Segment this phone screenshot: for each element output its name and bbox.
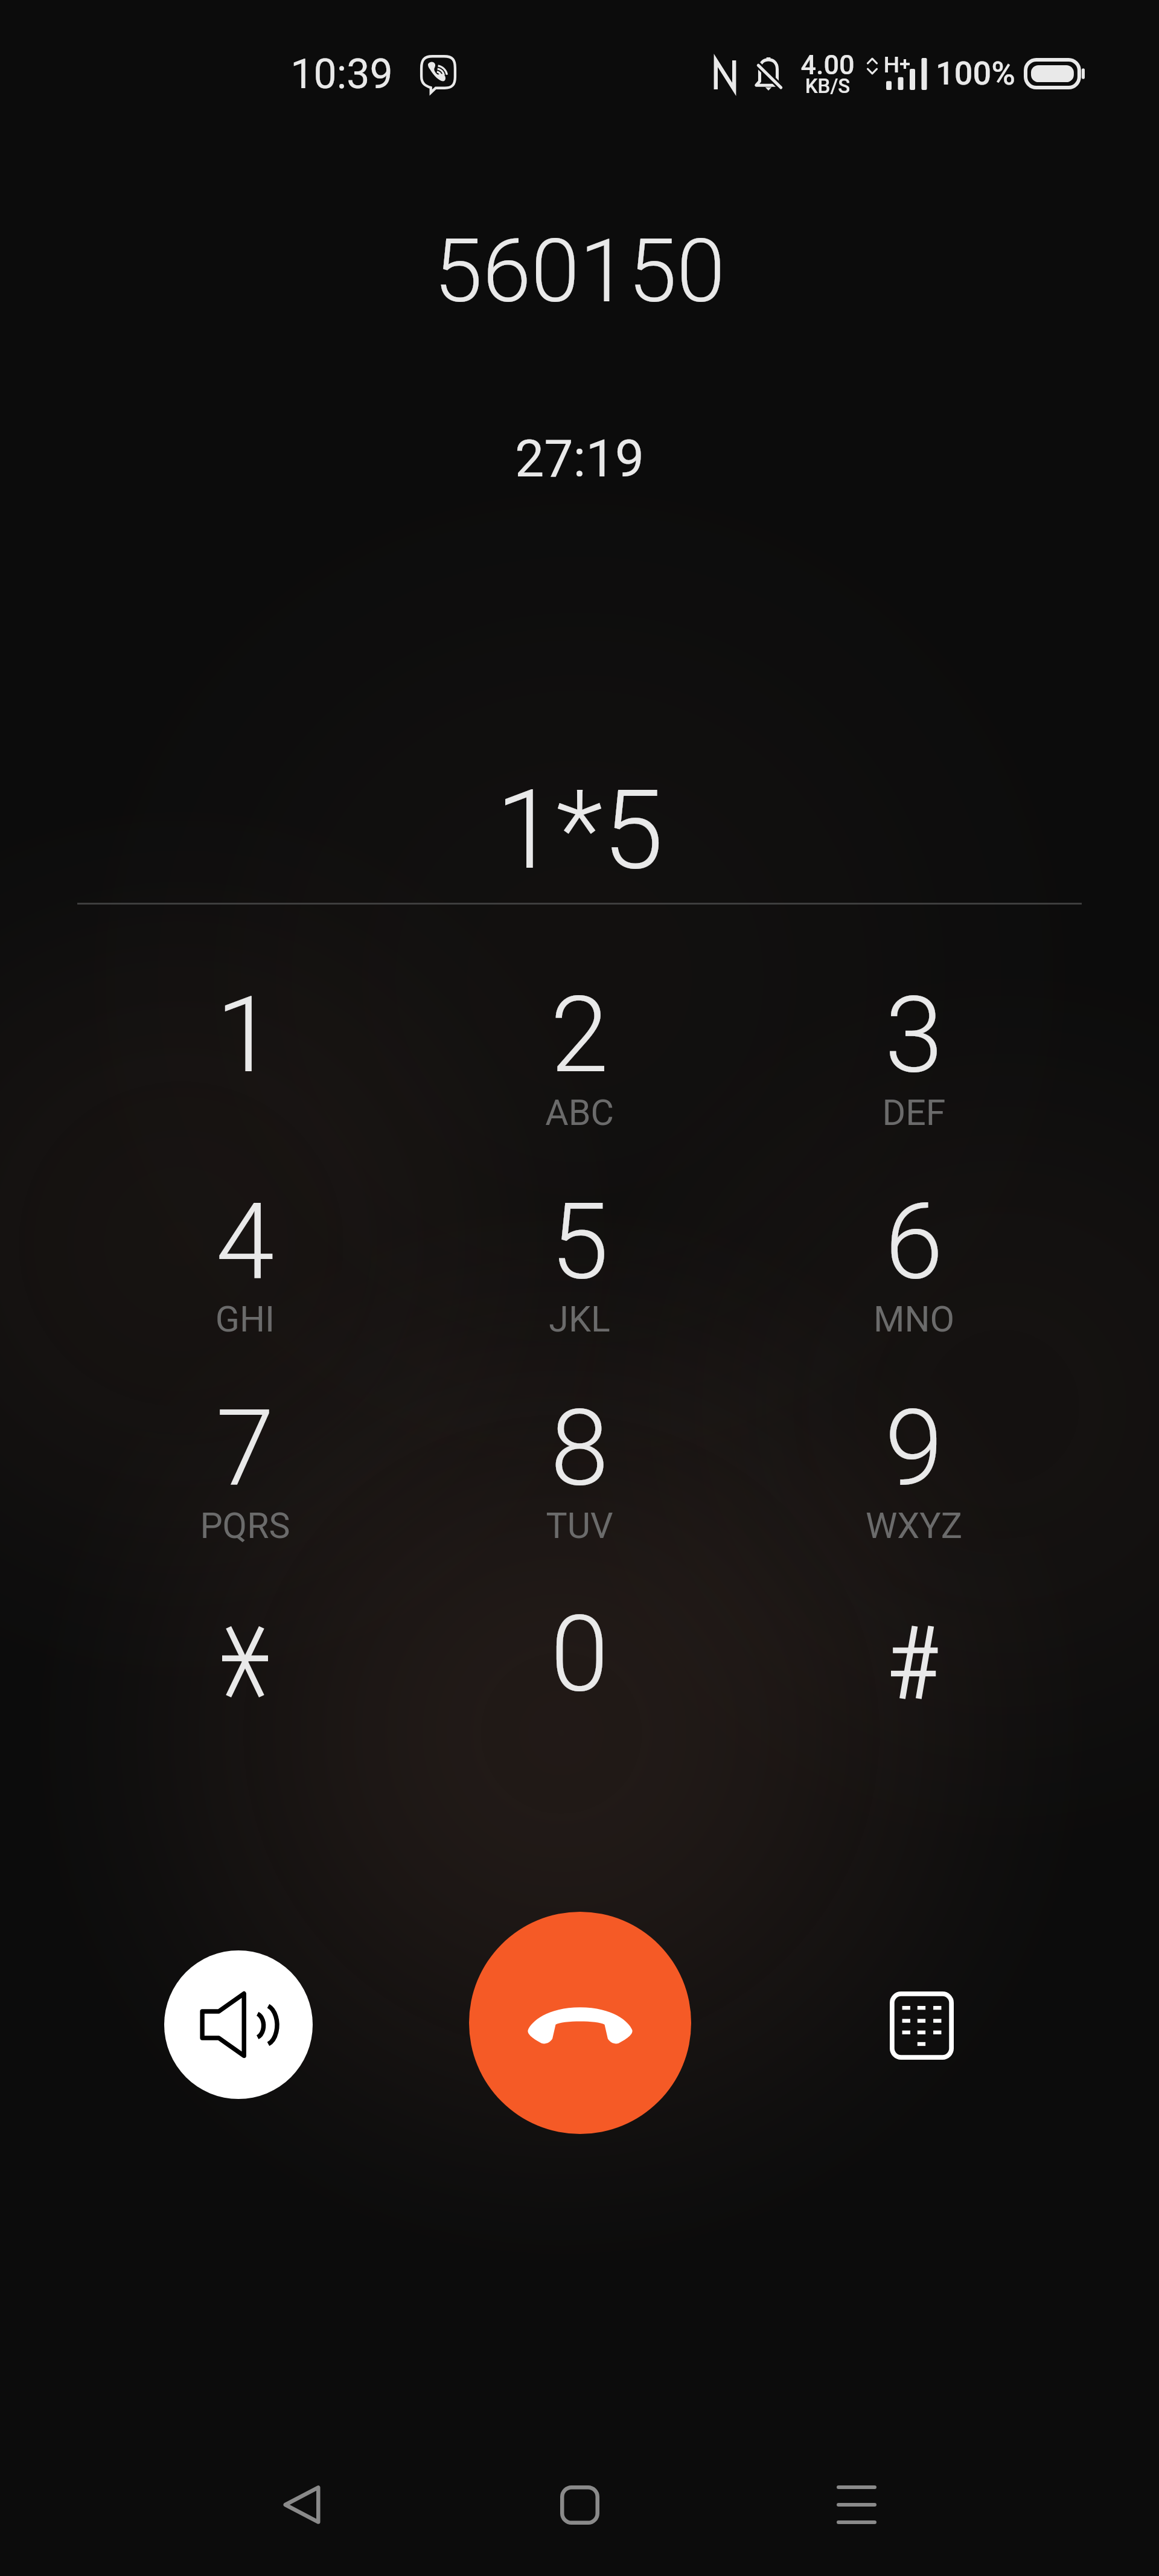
staticText: 5 xyxy=(429,1181,730,1304)
button[interactable]: Speaker xyxy=(164,1950,313,2099)
staticText: 3 xyxy=(763,974,1065,1097)
staticText: ABC xyxy=(429,1092,730,1133)
button[interactable]: 1 xyxy=(78,958,412,1165)
staticText: 6 xyxy=(763,1181,1065,1304)
staticText: 7 xyxy=(94,1387,396,1510)
staticText: 2 xyxy=(429,974,730,1097)
staticText: 4 xyxy=(94,1181,396,1304)
button[interactable]: 8 xyxy=(412,1371,747,1578)
staticText: H xyxy=(855,52,928,78)
staticText: 0 xyxy=(429,1593,730,1716)
staticText: 10:39 xyxy=(221,50,462,98)
button[interactable]: 3 xyxy=(747,958,1081,1165)
button[interactable]: Back xyxy=(254,2456,350,2553)
staticText: PQRS xyxy=(94,1505,396,1546)
button[interactable]: 7 xyxy=(78,1371,412,1578)
button[interactable]: 4 xyxy=(78,1165,412,1371)
staticText: 100% xyxy=(885,54,1066,92)
button[interactable]: 2 xyxy=(412,958,747,1165)
button[interactable]: Recent apps xyxy=(808,2456,905,2553)
button[interactable]: * xyxy=(78,1577,412,1784)
button[interactable]: 0 xyxy=(412,1577,747,1784)
staticText: DEF xyxy=(763,1092,1065,1133)
button[interactable]: End call xyxy=(469,1912,691,2134)
staticText: MNO xyxy=(763,1298,1065,1340)
staticText: TUV xyxy=(429,1505,730,1546)
staticText: 560150 xyxy=(0,220,1159,322)
button[interactable]: 6 xyxy=(747,1165,1081,1371)
button[interactable]: Keypad xyxy=(870,1972,974,2079)
staticText: 8 xyxy=(429,1387,730,1510)
staticText: 27:19 xyxy=(0,428,1159,489)
staticText: JKL xyxy=(429,1298,730,1340)
button[interactable]: Home xyxy=(531,2456,628,2553)
staticText: 1 xyxy=(94,974,396,1097)
button[interactable]: # xyxy=(747,1577,1081,1784)
button[interactable]: 5 xyxy=(412,1165,747,1371)
staticText: KB/S xyxy=(737,74,918,98)
staticText: WXYZ xyxy=(763,1505,1065,1546)
staticText: 1*5 xyxy=(0,766,1159,894)
button[interactable]: 9 xyxy=(747,1371,1081,1578)
staticText: GHI xyxy=(94,1298,396,1340)
staticText: 4.00 xyxy=(737,49,918,81)
staticText: 9 xyxy=(763,1387,1065,1510)
